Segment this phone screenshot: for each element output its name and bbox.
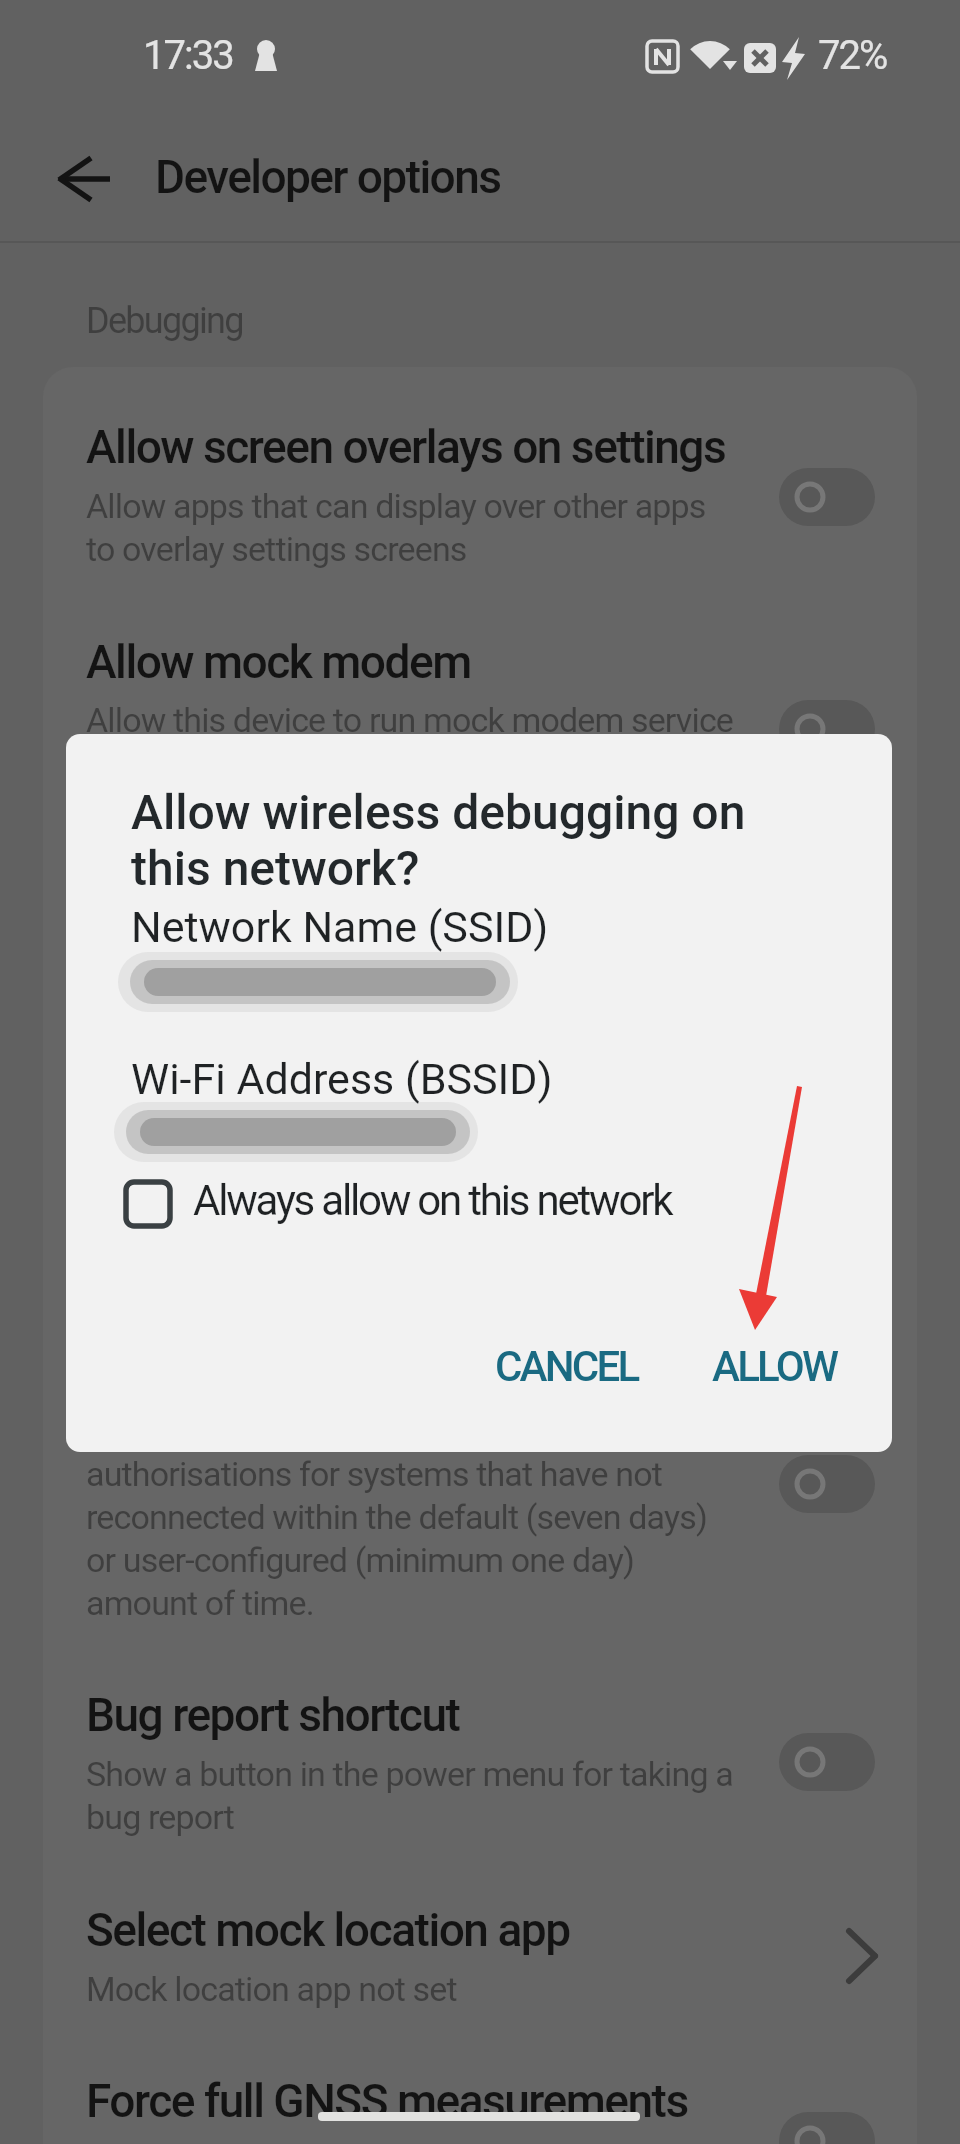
staticText: Allow mock modem bbox=[86, 635, 471, 689]
staticText: authorisations for systems that have not bbox=[86, 1454, 663, 1494]
button[interactable] bbox=[779, 700, 875, 758]
staticText: reconnected within the default (seven da… bbox=[86, 1497, 707, 1537]
staticText: bug report bbox=[86, 1797, 235, 1837]
staticText: or user-configured (minimum one day) bbox=[86, 1540, 634, 1580]
staticText: Allow screen overlays on settings bbox=[86, 420, 726, 474]
button[interactable] bbox=[779, 1455, 875, 1513]
staticText: Developer options bbox=[155, 150, 501, 204]
staticText: Allow this device to run mock modem serv… bbox=[86, 700, 734, 740]
staticText: Network Name (SSID) bbox=[131, 902, 549, 952]
staticText: Debugging bbox=[86, 300, 243, 342]
button[interactable] bbox=[779, 1733, 875, 1791]
staticText: Bug report shortcut bbox=[86, 1688, 460, 1742]
staticText: CANCEL bbox=[495, 1342, 638, 1391]
staticText: to overlay settings screens bbox=[86, 529, 467, 569]
staticText: Wi-Fi Address (BSSID) bbox=[131, 1054, 553, 1104]
staticText: amount of time. bbox=[86, 1583, 314, 1623]
staticText: this network? bbox=[131, 840, 420, 896]
staticText: Force full GNSS measurements bbox=[86, 2074, 688, 2128]
staticText: Allow wireless debugging on bbox=[131, 784, 746, 840]
button[interactable] bbox=[45, 152, 121, 208]
staticText: 17:33 bbox=[143, 32, 233, 79]
button[interactable] bbox=[43, 1660, 917, 1860]
button[interactable] bbox=[779, 2112, 875, 2144]
button[interactable] bbox=[779, 468, 875, 526]
button[interactable] bbox=[43, 1880, 917, 2030]
staticText: Allow apps that can display over other a… bbox=[86, 486, 706, 526]
staticText: ALLOW bbox=[712, 1342, 837, 1391]
staticText: Select mock location app bbox=[86, 1903, 570, 1957]
button[interactable] bbox=[43, 400, 917, 610]
button[interactable]: CANCEL bbox=[479, 1326, 654, 1406]
staticText: Show a button in the power menu for taki… bbox=[86, 1754, 733, 1794]
staticText: 72% bbox=[818, 32, 887, 79]
staticText: Always allow on this network bbox=[193, 1176, 672, 1225]
staticText: Mock location app not set bbox=[86, 1969, 457, 2009]
button[interactable] bbox=[111, 1169, 751, 1239]
button[interactable]: ALLOW bbox=[699, 1326, 849, 1406]
